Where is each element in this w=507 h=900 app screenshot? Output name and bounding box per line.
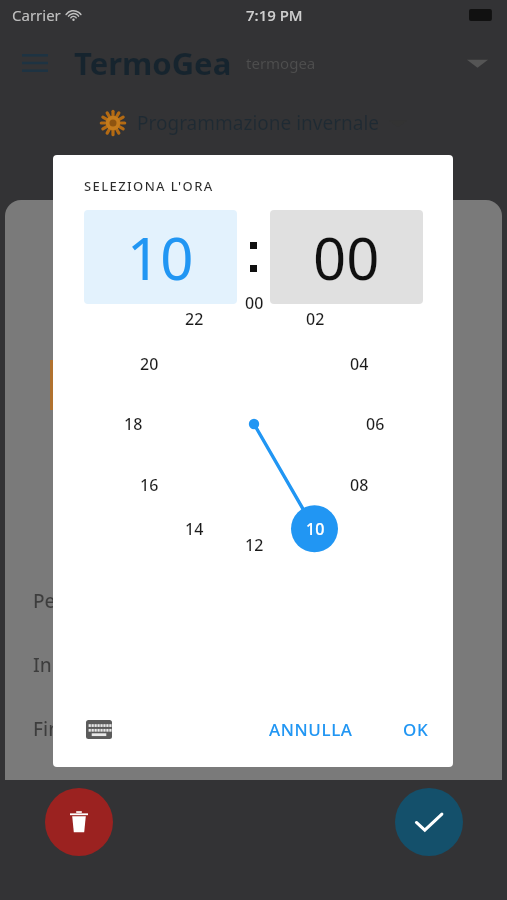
staticText: 00 bbox=[245, 292, 264, 314]
staticText: 08 bbox=[350, 474, 369, 496]
staticText: 02 bbox=[306, 308, 325, 330]
button[interactable]: Elimina bbox=[45, 788, 113, 856]
button[interactable]: Seleziona impianto bbox=[463, 49, 491, 77]
staticText: 04 bbox=[350, 353, 369, 375]
staticText: TermoGea bbox=[74, 42, 232, 84]
staticText: 14 bbox=[185, 518, 204, 540]
staticText: termogea bbox=[246, 53, 316, 73]
button[interactable]: 00 bbox=[270, 210, 423, 304]
button[interactable]: Menu bbox=[18, 46, 52, 80]
button[interactable]: 02 bbox=[294, 305, 336, 333]
button[interactable]: 06 bbox=[354, 410, 396, 438]
button[interactable]: OK bbox=[389, 709, 443, 750]
staticText: ANNULLA bbox=[269, 718, 353, 741]
staticText: 10 bbox=[127, 218, 194, 297]
staticText: 16 bbox=[140, 474, 159, 496]
staticText: Carrier bbox=[12, 5, 61, 25]
staticText: 18 bbox=[124, 413, 143, 435]
staticText: Periodo bbox=[33, 588, 104, 614]
staticText: Fine bbox=[33, 716, 71, 742]
button[interactable]: 16 bbox=[128, 471, 170, 499]
staticText: 20 bbox=[140, 353, 159, 375]
button[interactable]: 20 bbox=[128, 350, 170, 378]
button[interactable]: 18 bbox=[112, 410, 154, 438]
staticText: 7:19 PM bbox=[246, 5, 303, 25]
button[interactable]: Conferma bbox=[395, 788, 463, 856]
button[interactable]: Inserimento da tastiera bbox=[78, 708, 120, 750]
staticText: Programmazione invernale bbox=[137, 110, 380, 136]
staticText: 22 bbox=[185, 308, 204, 330]
staticText: 00 bbox=[313, 218, 380, 297]
button[interactable]: 04 bbox=[338, 350, 380, 378]
button[interactable]: 08 bbox=[338, 471, 380, 499]
button[interactable]: 22 bbox=[173, 305, 215, 333]
staticText: SELEZIONA L'ORA bbox=[84, 177, 214, 195]
button[interactable]: 00 bbox=[233, 289, 275, 317]
button[interactable]: 10 bbox=[84, 210, 237, 304]
staticText: 12 bbox=[245, 534, 264, 556]
button[interactable]: 14 bbox=[173, 515, 215, 543]
staticText: OK bbox=[403, 718, 429, 741]
staticText: 10 bbox=[306, 518, 325, 540]
staticText: Inizio bbox=[33, 652, 83, 678]
button[interactable]: 12 bbox=[233, 531, 275, 559]
staticText: 06 bbox=[366, 413, 385, 435]
button[interactable]: 10 bbox=[294, 515, 336, 543]
button[interactable]: ANNULLA bbox=[255, 709, 367, 750]
